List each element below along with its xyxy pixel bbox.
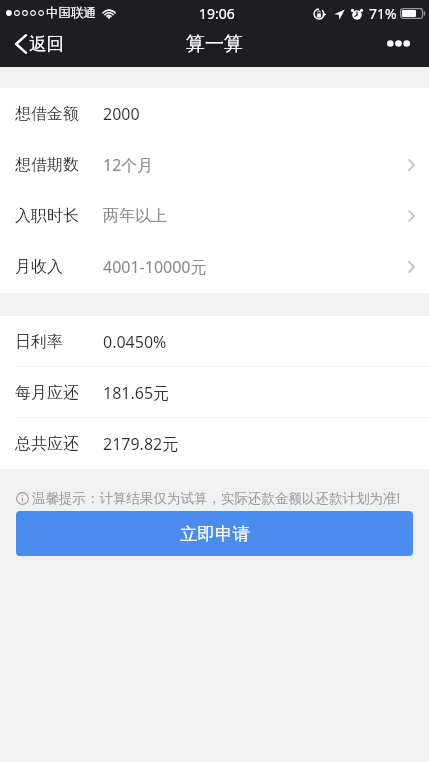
- staticText: 2000: [103, 103, 140, 125]
- staticText: 返回: [29, 33, 64, 55]
- staticText: 温馨提示：计算结果仅为试算，实际还款金额以还款计划为准!: [32, 489, 401, 507]
- staticText: 两年以上: [103, 206, 167, 226]
- button[interactable]: More options: [371, 28, 429, 59]
- button[interactable]: 想借金额: [0, 88, 429, 139]
- staticText: 立即申请: [180, 523, 250, 545]
- staticText: 71%: [369, 4, 397, 23]
- button[interactable]: 想借期数: [0, 139, 429, 190]
- staticText: 月收入: [15, 257, 63, 277]
- staticText: 想借期数: [15, 155, 79, 175]
- staticText: 日利率: [15, 332, 63, 352]
- button[interactable]: 总共应还: [0, 418, 429, 469]
- staticText: 想借金额: [15, 104, 79, 124]
- staticText: 4001-10000元: [103, 256, 207, 278]
- button[interactable]: 入职时长: [0, 190, 429, 241]
- button[interactable]: 返回: [0, 29, 76, 59]
- staticText: 入职时长: [15, 206, 79, 226]
- button[interactable]: 月收入: [0, 241, 429, 293]
- staticText: 算一算: [186, 32, 243, 56]
- button[interactable]: 立即申请: [16, 511, 413, 556]
- button[interactable]: 每月应还: [0, 367, 429, 418]
- staticText: 19:06: [199, 4, 235, 23]
- staticText: 总共应还: [15, 434, 79, 454]
- button[interactable]: 日利率: [0, 316, 429, 367]
- staticText: 0.0450%: [103, 331, 167, 353]
- staticText: 中国联通: [46, 5, 96, 21]
- staticText: 2179.82元: [103, 433, 179, 455]
- staticText: 每月应还: [15, 383, 79, 403]
- staticText: 12个月: [103, 154, 154, 176]
- staticText: 181.65元: [103, 382, 170, 404]
